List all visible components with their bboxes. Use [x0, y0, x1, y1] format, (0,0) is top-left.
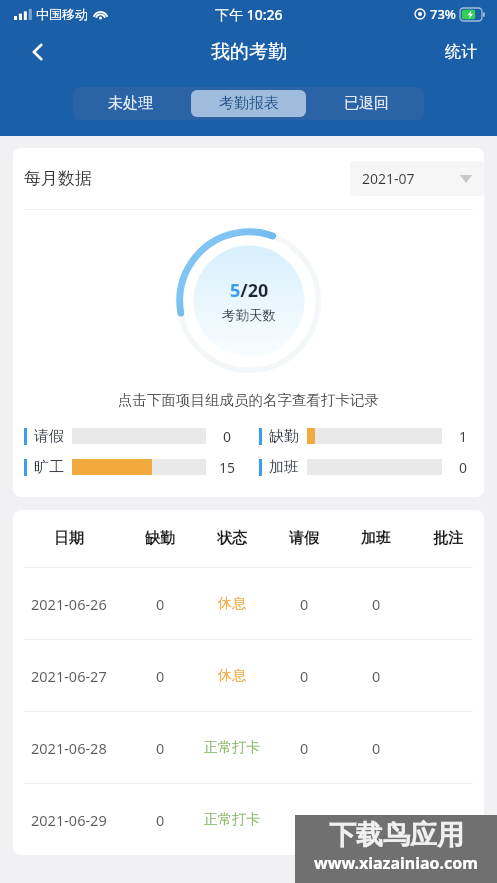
staticText: 0	[459, 458, 468, 477]
button[interactable]: 2021-07	[350, 161, 484, 196]
button[interactable]: 2021-06-27	[13, 640, 484, 711]
staticText: 下午 10:26	[215, 5, 283, 24]
staticText: 0	[372, 666, 381, 686]
button[interactable]: 缺勤	[248, 425, 484, 447]
staticText: 0	[300, 810, 309, 830]
staticText: 已退回	[344, 94, 389, 113]
button[interactable]: 2021-06-29	[13, 784, 484, 855]
staticText: 0	[156, 810, 165, 830]
staticText: 考勤报表	[219, 94, 279, 113]
button[interactable]: 加班	[248, 456, 484, 478]
button[interactable]: 考勤报表	[191, 90, 306, 117]
staticText: 中国移动	[36, 6, 88, 22]
staticText: 考勤天数	[222, 307, 276, 324]
button[interactable]: Back	[16, 30, 60, 74]
staticText: 加班	[361, 529, 391, 548]
staticText: 休息	[218, 595, 246, 613]
staticText: www.xiazainiao.com	[314, 852, 478, 874]
button[interactable]: 2021-06-28	[13, 712, 484, 783]
staticText: 正常打卡	[204, 811, 260, 829]
staticText: 0	[372, 594, 381, 614]
staticText: 请假	[289, 529, 319, 548]
button[interactable]: 旷工	[13, 456, 248, 478]
staticText: 统计	[445, 42, 477, 62]
staticText: 0	[156, 738, 165, 758]
staticText: 73%	[430, 5, 456, 23]
button[interactable]: 请假	[13, 425, 248, 447]
staticText: 请假	[34, 427, 64, 446]
staticText: 0	[300, 666, 309, 686]
staticText: 0	[300, 594, 309, 614]
staticText: 我的考勤	[211, 40, 287, 64]
staticText: 下载鸟应用	[329, 818, 464, 852]
staticText: 2021-06-27	[31, 666, 107, 686]
staticText: 0	[372, 810, 381, 830]
staticText: 旷工	[34, 458, 64, 477]
staticText: 正常打卡	[204, 739, 260, 757]
staticText: 加班	[269, 458, 299, 477]
staticText: 缺勤	[269, 427, 299, 446]
staticText: 点击下面项目组成员的名字查看打卡记录	[13, 391, 484, 409]
staticText: 状态	[217, 529, 247, 548]
staticText: 0	[156, 594, 165, 614]
staticText: 批注	[433, 529, 463, 548]
button[interactable]: 已退回	[312, 90, 421, 117]
staticText: 0	[300, 738, 309, 758]
staticText: 5/20	[230, 278, 269, 303]
staticText: 休息	[218, 667, 246, 685]
staticText: 2021-07	[362, 169, 415, 188]
staticText: 2021-06-26	[31, 594, 107, 614]
staticText: 每月数据	[24, 168, 92, 189]
button[interactable]: 2021-06-26	[13, 568, 484, 639]
staticText: 0	[156, 666, 165, 686]
button[interactable]: 未处理	[76, 90, 185, 117]
staticText: 1	[459, 427, 468, 446]
staticText: 0	[223, 427, 232, 446]
staticText: 2021-06-29	[31, 810, 107, 830]
staticText: 15	[219, 458, 236, 477]
button[interactable]: 统计	[437, 34, 485, 70]
staticText: 2021-06-28	[31, 738, 107, 758]
staticText: 日期	[54, 529, 84, 548]
staticText: 0	[372, 738, 381, 758]
staticText: 未处理	[108, 94, 153, 113]
staticText: 缺勤	[145, 529, 175, 548]
